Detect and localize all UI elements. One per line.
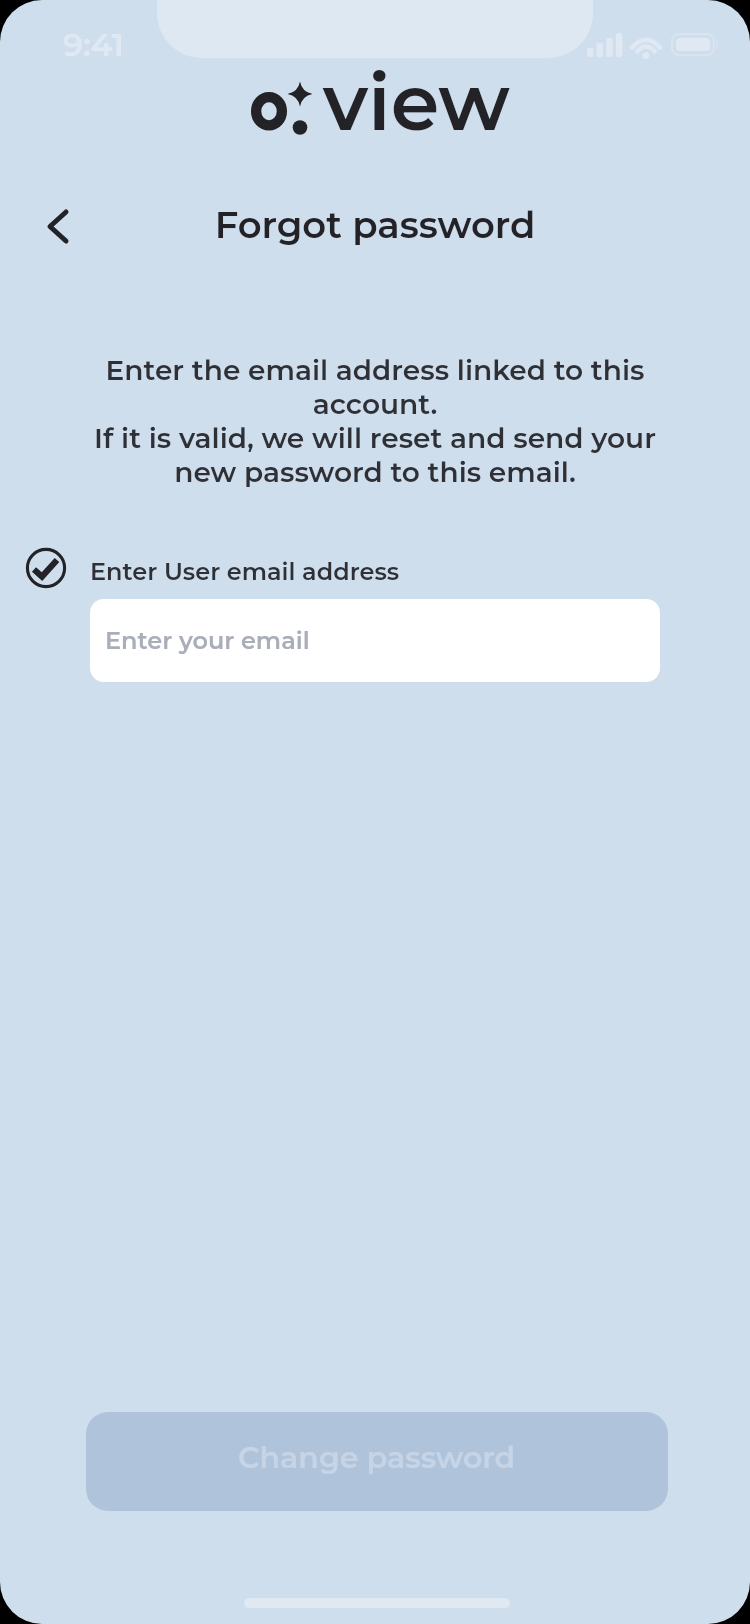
staticText: view — [323, 54, 511, 149]
staticText: Enter User email address — [90, 557, 400, 586]
staticText: 9:41 — [63, 25, 124, 64]
button[interactable]: Change password — [86, 1412, 668, 1511]
staticText: Forgot password — [0, 202, 750, 247]
button[interactable]: Enter your email — [90, 599, 660, 682]
button[interactable] — [28, 197, 88, 257]
staticText: Enter the email address linked to this a… — [0, 353, 750, 489]
staticText: Enter your email — [105, 626, 310, 655]
staticText: Change password — [238, 1439, 516, 1476]
